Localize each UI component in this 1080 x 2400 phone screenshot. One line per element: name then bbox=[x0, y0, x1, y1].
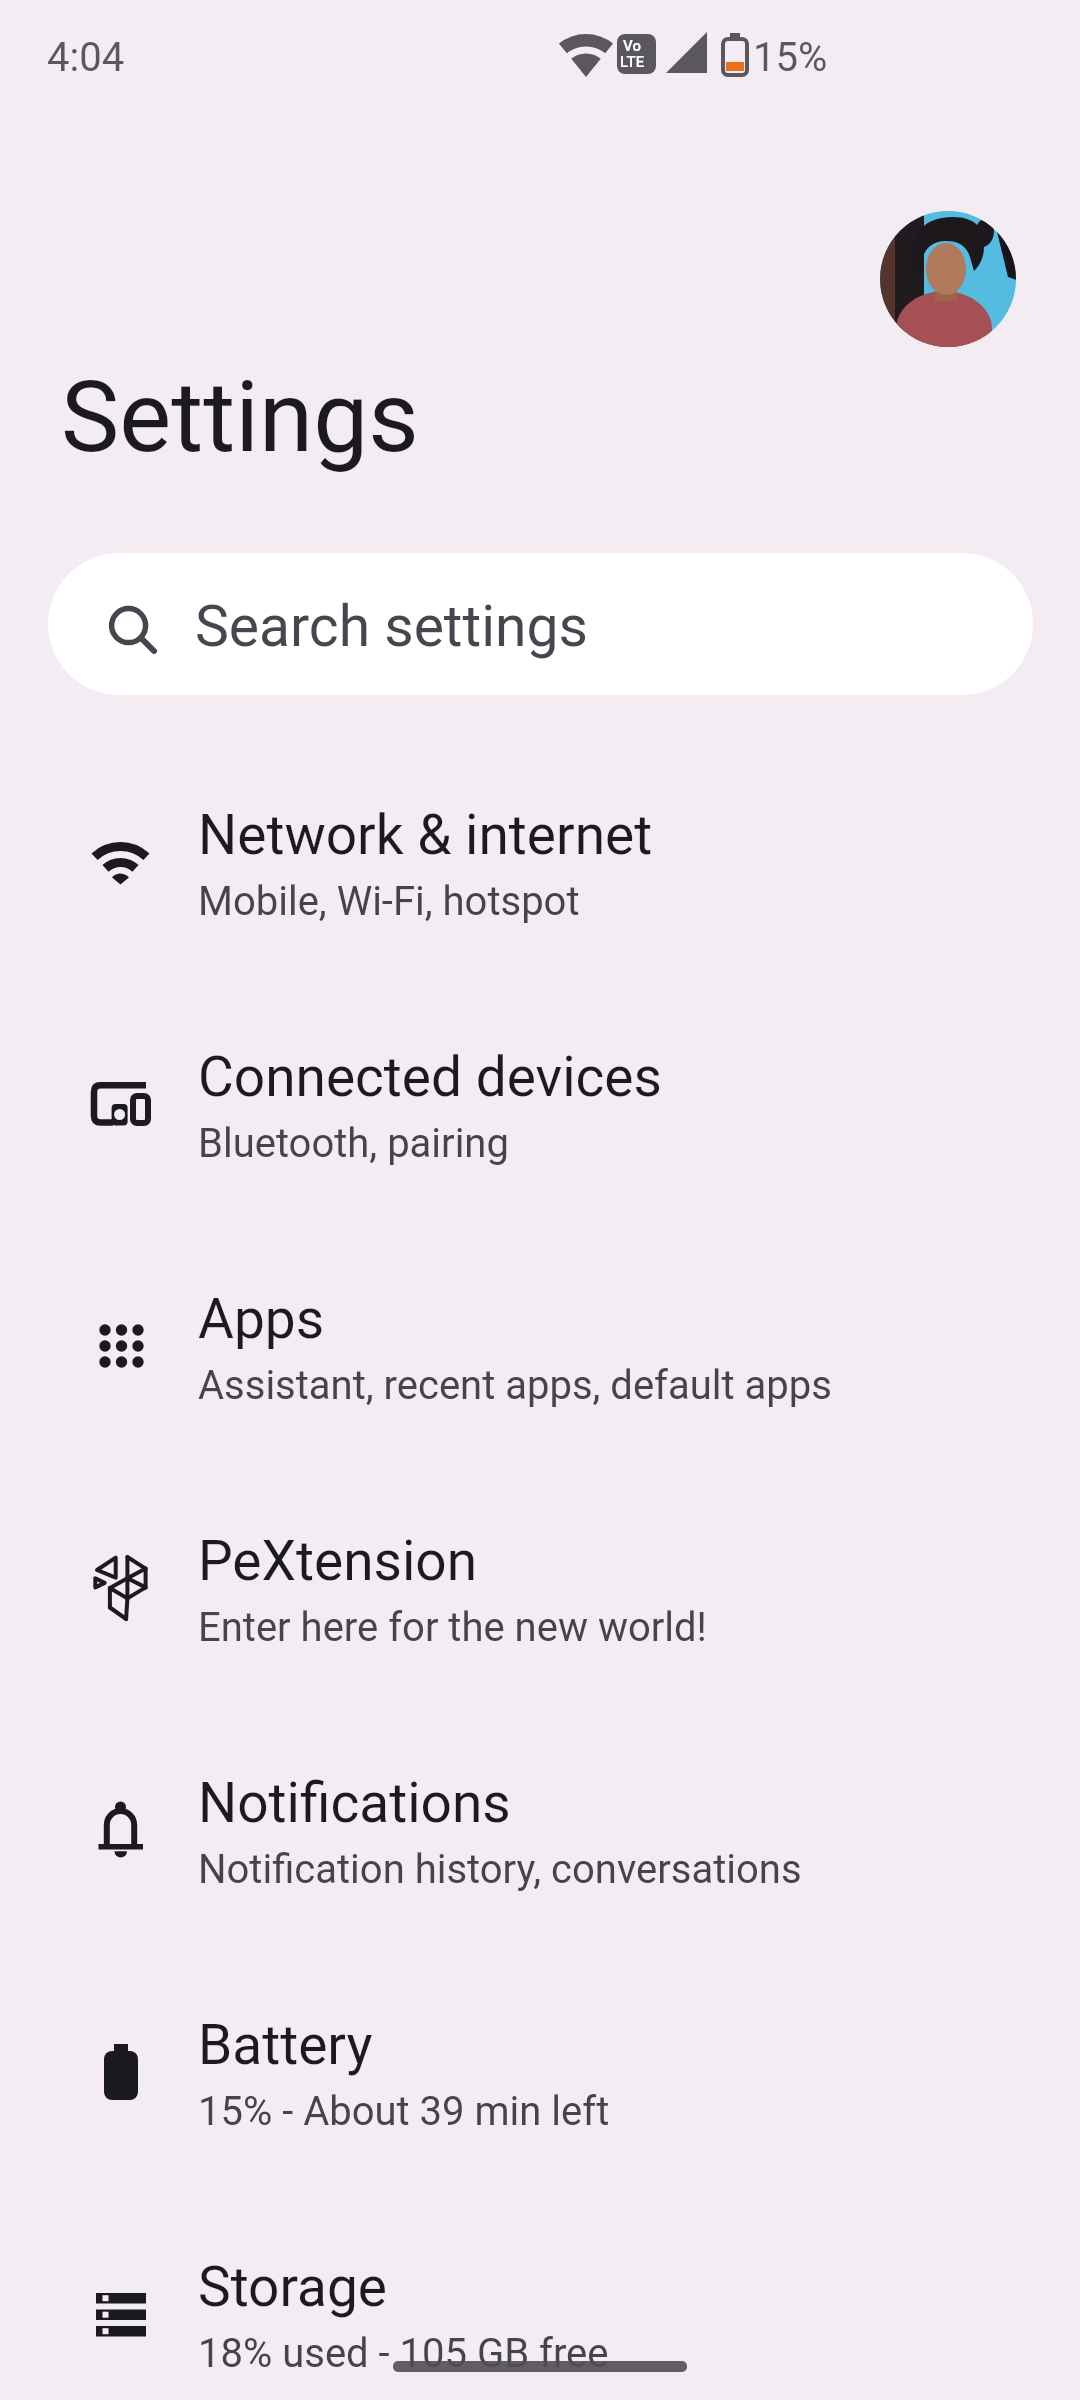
button[interactable]: Notifications bbox=[0, 1709, 1080, 1951]
button[interactable]: Connected devices bbox=[0, 983, 1080, 1225]
button[interactable]: Search settings bbox=[48, 553, 1033, 695]
button[interactable]: Battery bbox=[0, 1951, 1080, 2193]
button[interactable]: Storage bbox=[0, 2193, 1080, 2400]
staticText: Battery bbox=[198, 2013, 373, 2077]
button[interactable]: Network & internet bbox=[0, 741, 1080, 983]
button[interactable]: PeXtension bbox=[0, 1467, 1080, 1709]
staticText: Assistant, recent apps, default apps bbox=[198, 1362, 832, 1409]
staticText: Bluetooth, pairing bbox=[198, 1120, 509, 1167]
staticText: Apps bbox=[198, 1287, 325, 1351]
staticText: Storage bbox=[198, 2255, 388, 2319]
staticText: Connected devices bbox=[198, 1045, 662, 1109]
staticText: Settings bbox=[61, 360, 419, 475]
staticText: PeXtension bbox=[198, 1529, 478, 1593]
staticText: Notification history, conversations bbox=[198, 1846, 802, 1893]
button[interactable]: Apps bbox=[0, 1225, 1080, 1467]
staticText: 18% used - 105 GB free bbox=[198, 2330, 609, 2377]
staticText: Mobile, Wi-Fi, hotspot bbox=[198, 878, 580, 925]
staticText: Enter here for the new world! bbox=[198, 1604, 707, 1651]
staticText: Vo bbox=[623, 37, 641, 55]
staticText: 15% bbox=[753, 34, 828, 81]
staticText: Search settings bbox=[195, 593, 588, 660]
staticText: Notifications bbox=[198, 1771, 511, 1835]
staticText: 4:04 bbox=[47, 34, 125, 81]
staticText: LTE bbox=[620, 53, 645, 71]
button[interactable] bbox=[880, 211, 1016, 347]
staticText: Network & internet bbox=[198, 803, 653, 867]
staticText: 15% - About 39 min left bbox=[198, 2088, 610, 2135]
